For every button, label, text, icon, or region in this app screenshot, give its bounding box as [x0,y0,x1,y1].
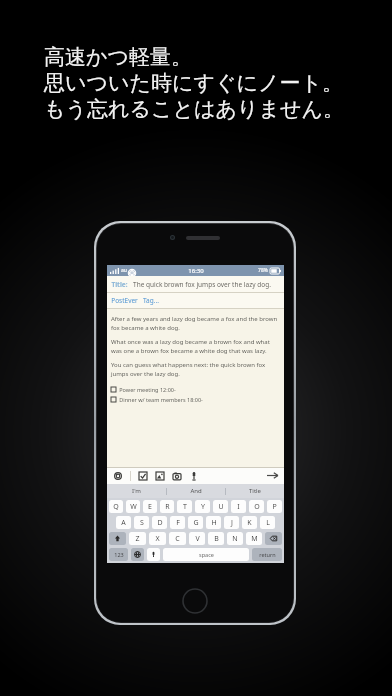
staticText: After a few years and lazy dog became a … [111,315,280,331]
button[interactable]: 123 [109,548,128,561]
button[interactable]: And [167,484,225,498]
button[interactable]: C [169,532,186,545]
staticText: space [199,551,214,558]
button[interactable]: Settings [112,470,123,481]
button[interactable]: E [143,500,157,513]
staticText: O [254,502,260,512]
staticText: You can guess what happens next: the qui… [111,361,280,377]
button[interactable]: P [267,500,282,513]
staticText: I'm [132,487,141,495]
staticText: Dinner w/ team members 18:00- [119,396,203,403]
button[interactable]: K [242,516,257,529]
staticText: I [237,502,240,512]
staticText: 123 [114,551,124,558]
button[interactable]: M [246,532,262,545]
button[interactable]: V [189,532,205,545]
button[interactable]: D [152,516,167,529]
staticText: H [211,518,217,528]
staticText: D [157,518,163,528]
button[interactable]: X [149,532,166,545]
button[interactable]: Title: [107,276,284,292]
staticText: And [190,487,202,495]
staticText: Z [135,534,140,544]
button[interactable]: N [227,532,243,545]
button[interactable]: G [188,516,203,529]
button[interactable]: I'm [107,484,166,498]
staticText: P [272,502,277,512]
staticText: 16:30 [188,267,204,275]
staticText: K [247,518,252,528]
staticText: Y [201,502,205,512]
staticText: PostEver [111,296,138,305]
button[interactable]: R [160,500,174,513]
button[interactable]: Emoji [131,548,144,561]
staticText: T [183,502,187,512]
button[interactable]: B [208,532,224,545]
button[interactable]: I [231,500,246,513]
staticText: Title [249,487,261,495]
staticText: L [266,518,270,528]
staticText: X [155,534,160,544]
button[interactable]: return [252,548,282,561]
button[interactable]: Send [266,469,279,482]
button[interactable]: S [134,516,149,529]
staticText: Q [113,502,119,512]
button[interactable]: Title [226,484,284,498]
staticText: The quick brown fox jumps over the lazy … [133,280,271,289]
staticText: N [232,534,238,544]
staticText: return [259,551,276,558]
button[interactable]: Z [129,532,146,545]
button[interactable]: Backspace [265,532,282,545]
staticText: E [148,502,152,512]
button[interactable]: Power meeting 12:00- [111,386,280,393]
staticText: au [121,267,127,274]
button[interactable]: T [177,500,192,513]
staticText: R [165,502,170,512]
button[interactable]: A [116,516,131,529]
button[interactable]: PostEver [107,293,284,308]
staticText: Title: [111,280,128,289]
button[interactable]: H [206,516,221,529]
button[interactable]: Photo [154,470,165,481]
button[interactable]: Y [195,500,210,513]
other: Home [182,588,208,614]
staticText: 78% [258,267,268,274]
staticText: What once was a lazy dog became a brown … [111,338,280,354]
staticText: S [140,518,144,528]
button[interactable]: O [249,500,264,513]
button[interactable]: F [170,516,185,529]
staticText: J [231,518,233,528]
button[interactable]: Camera [171,470,182,481]
staticText: 高速かつ軽量。 [44,44,192,70]
staticText: W [130,502,137,512]
button[interactable]: Shift [109,532,126,545]
button[interactable]: Checklist [137,470,148,481]
staticText: M [251,534,258,544]
button[interactable]: W [126,500,140,513]
button[interactable]: J [224,516,239,529]
button[interactable]: U [213,500,228,513]
button[interactable]: Q [109,500,123,513]
staticText: B [214,534,219,544]
button[interactable]: Dictate [147,548,160,561]
staticText: U [218,502,224,512]
staticText: V [195,534,200,544]
staticText: C [175,534,180,544]
staticText: A [121,518,126,528]
button[interactable]: space [163,548,249,561]
staticText: Tag... [143,296,159,305]
staticText: Power meeting 12:00- [119,386,176,393]
staticText: F [176,518,180,528]
staticText: 思いついた時にすぐにノート。 [44,70,343,96]
button[interactable]: Voice [188,470,199,481]
button[interactable]: L [260,516,275,529]
button[interactable]: Dinner w/ team members 18:00- [111,396,280,403]
staticText: G [193,518,199,528]
staticText: もう忘れることはありません。 [44,96,344,122]
